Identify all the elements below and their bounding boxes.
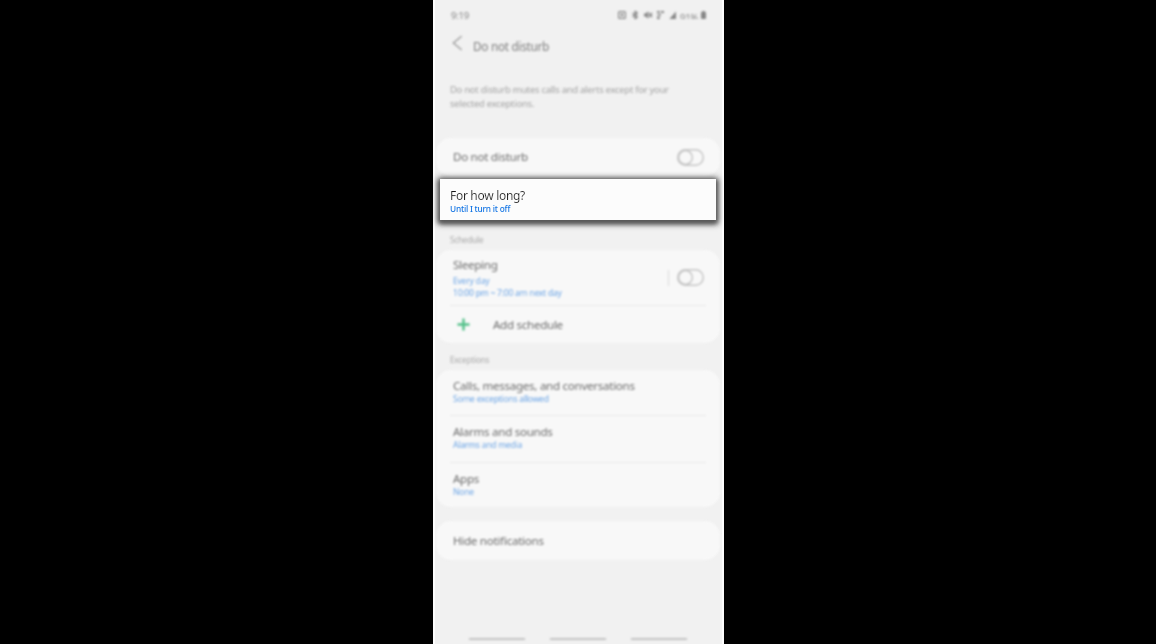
button[interactable]: Back <box>631 622 687 644</box>
staticText: Add schedule <box>493 317 563 333</box>
staticText: Alarms and sounds <box>453 424 553 440</box>
button[interactable]: Home <box>550 622 606 644</box>
staticText: Exceptions <box>450 354 490 365</box>
button[interactable]: Sleeping <box>436 250 720 305</box>
button[interactable]: Do not disturb <box>436 138 720 176</box>
staticText: For how long? <box>450 187 526 203</box>
staticText: Schedule <box>450 234 484 245</box>
staticText: Some exceptions allowed <box>453 393 549 405</box>
staticText: Do not disturb mutes calls and alerts ex… <box>450 83 669 110</box>
staticText: Sleeping <box>453 257 498 273</box>
button[interactable]: Apps <box>436 463 720 507</box>
staticText: 9:19 <box>451 9 469 22</box>
button[interactable]: Add schedule <box>436 306 720 343</box>
staticText: Hide notifications <box>453 533 544 549</box>
button[interactable]: Back <box>444 30 470 56</box>
button[interactable]: Alarms and sounds <box>436 416 720 462</box>
staticText: 91% <box>680 11 699 19</box>
staticText: None <box>453 486 474 498</box>
staticText: Until I turn it off <box>450 203 511 214</box>
staticText: 10:00 pm ~ 7:00 am next day <box>453 287 562 299</box>
staticText: Calls, messages, and conversations <box>453 378 635 394</box>
staticText: Apps <box>453 471 480 487</box>
staticText: Do not disturb <box>453 149 528 165</box>
button[interactable]: For how long? <box>440 179 716 220</box>
staticText: Every day <box>453 275 490 287</box>
staticText: Do not disturb <box>473 38 550 54</box>
button[interactable]: Recents <box>469 622 525 644</box>
button[interactable]: Hide notifications <box>436 521 720 560</box>
staticText: Alarms and media <box>453 439 523 451</box>
button[interactable]: Calls, messages, and conversations <box>436 370 720 415</box>
